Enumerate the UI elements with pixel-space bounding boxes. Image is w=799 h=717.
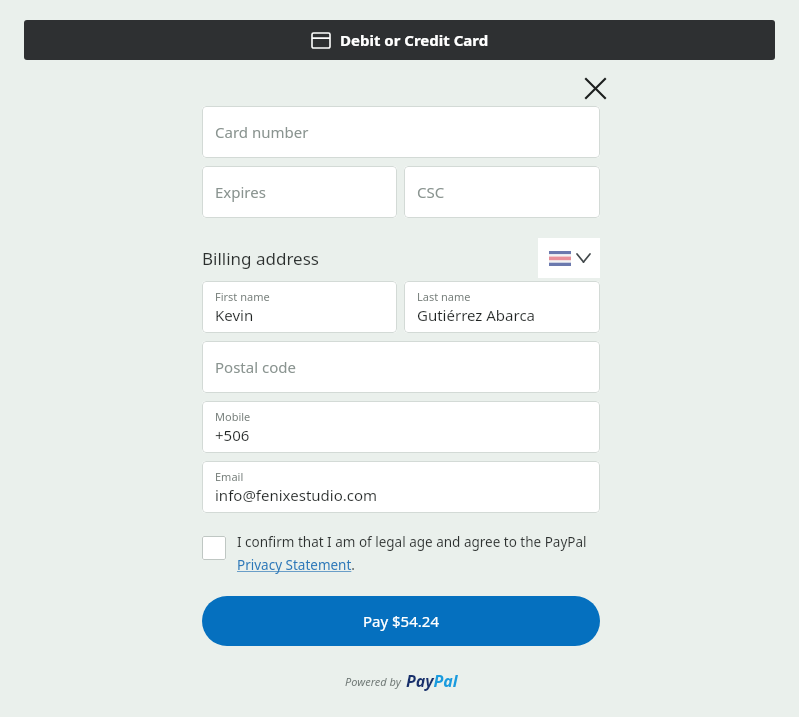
button[interactable]: Last name <box>404 281 600 333</box>
button[interactable]: CSC <box>404 166 600 218</box>
button[interactable]: Confirm legal age <box>202 536 226 560</box>
staticText: Gutiérrez Abarca <box>417 305 536 325</box>
staticText: Pay $54.24 <box>363 611 439 631</box>
staticText: info@fenixestudio.com <box>215 485 378 505</box>
button[interactable]: Select country <box>538 238 600 278</box>
button[interactable]: Close <box>577 70 613 106</box>
staticText: Email <box>215 469 244 484</box>
button[interactable]: Debit or Credit Card <box>24 20 775 60</box>
staticText: Last name <box>417 289 471 304</box>
staticText: Kevin <box>215 305 254 325</box>
button[interactable]: Expires <box>202 166 397 218</box>
staticText: Expires <box>215 182 266 202</box>
staticText: +506 <box>215 425 250 445</box>
button[interactable]: First name <box>202 281 397 333</box>
staticText: Postal code <box>215 357 296 377</box>
staticText: CSC <box>417 182 445 202</box>
button[interactable]: Mobile <box>202 401 600 453</box>
staticText: PayPal <box>406 670 458 692</box>
button[interactable]: Email <box>202 461 600 513</box>
button[interactable]: Card number <box>202 106 600 158</box>
staticText: Debit or Credit Card <box>340 30 489 50</box>
staticText: First name <box>215 289 270 304</box>
staticText: Mobile <box>215 409 251 424</box>
button[interactable]: Pay $54.24 <box>202 596 600 646</box>
button[interactable]: I confirm that I am of legal age and agr… <box>237 533 600 574</box>
staticText: Card number <box>215 122 309 142</box>
button[interactable]: Postal code <box>202 341 600 393</box>
staticText: Billing address <box>202 247 319 270</box>
staticText: Powered by <box>345 674 401 689</box>
